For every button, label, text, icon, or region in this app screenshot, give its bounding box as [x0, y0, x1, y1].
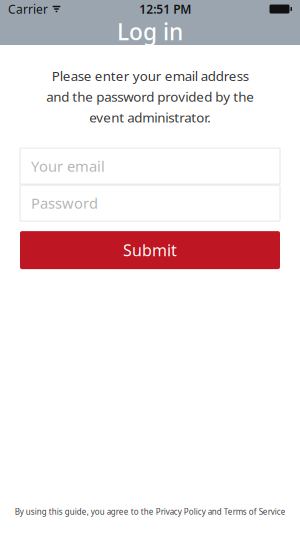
staticText: Please enter your email address and the …: [46, 67, 254, 126]
staticText: Carrier: [8, 1, 48, 17]
staticText: By using this guide, you agree to the Pr…: [14, 506, 285, 517]
staticText: Log in: [117, 16, 183, 46]
staticText: 12:51 PM: [139, 1, 191, 17]
button[interactable]: Submit: [20, 231, 280, 269]
button[interactable]: By using this guide, you agree to the Pr…: [0, 506, 300, 533]
staticText: Your email: [31, 156, 105, 176]
staticText: Password: [31, 193, 98, 213]
staticText: Submit: [123, 239, 177, 261]
